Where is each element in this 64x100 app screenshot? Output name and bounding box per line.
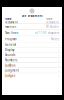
staticText: Judgment — [5, 69, 19, 72]
button[interactable]: Judges — [2, 73, 62, 78]
button[interactable]: Judgment — [2, 68, 62, 73]
staticText: Lockbox — [5, 64, 15, 67]
staticText: Program — [5, 37, 16, 41]
staticText: › — [58, 52, 59, 58]
staticText: › — [58, 47, 59, 52]
staticText: Name Testament — [5, 17, 18, 24]
button[interactable]: Display — [2, 47, 62, 52]
staticText: Sounds — [5, 53, 15, 57]
button[interactable]: Program — [2, 36, 62, 42]
staticText: › — [58, 73, 59, 78]
button[interactable]: Numbers — [2, 58, 62, 63]
staticText: Name Testament — [46, 17, 59, 24]
button[interactable]: Two lines — [2, 30, 62, 36]
button[interactable]: Sounds — [2, 53, 62, 57]
staticText: Display — [5, 48, 14, 52]
staticText: Judges — [5, 74, 15, 77]
staticText: of 1195 chapters — [35, 31, 59, 35]
staticText: Notes — [51, 37, 59, 41]
button[interactable]: Lockbox — [2, 63, 62, 68]
staticText: › — [58, 42, 59, 47]
staticText: Numbers — [5, 58, 17, 62]
button[interactable]: General — [2, 42, 62, 47]
staticText: › — [58, 63, 59, 68]
staticText: › — [58, 57, 59, 63]
staticText: General — [5, 43, 16, 46]
staticText: Favorites — [5, 25, 16, 28]
button[interactable]: Name Testament — [2, 18, 62, 23]
button[interactable]: Favorites — [2, 24, 62, 30]
staticText: Ian Testament — [21, 14, 42, 18]
staticText: › — [58, 68, 59, 73]
staticText: IR Audio — [46, 25, 59, 28]
staticText: Two lines — [5, 31, 18, 35]
